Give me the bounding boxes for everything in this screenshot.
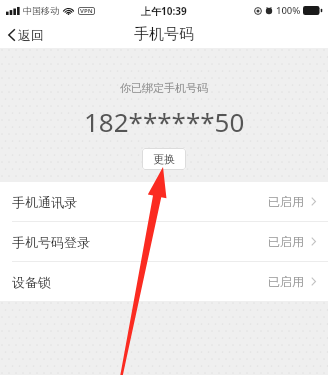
other: Open 手机通讯录 [311, 197, 316, 206]
staticText: VPN [80, 7, 93, 15]
button[interactable]: 更换 [142, 148, 186, 170]
staticText: 已启用 [268, 234, 304, 249]
button[interactable]: 手机号码登录 [0, 222, 328, 261]
staticText: 手机号码登录 [12, 234, 90, 250]
other: Open 设备锁 [311, 277, 316, 286]
button[interactable]: 设备锁 [0, 262, 328, 301]
staticText: 中国移动 [23, 5, 59, 16]
button[interactable]: 手机通讯录 [0, 182, 328, 221]
staticText: 手机通讯录 [12, 194, 77, 210]
staticText: 上午10:39 [141, 4, 187, 18]
staticText: 182******50 [84, 104, 245, 139]
staticText: 已启用 [268, 194, 304, 209]
staticText: 手机号码 [134, 25, 194, 44]
button[interactable]: 返回 [0, 22, 56, 48]
other: Open 手机号码登录 [311, 237, 316, 246]
staticText: 更换 [153, 152, 175, 166]
staticText: 已启用 [268, 274, 304, 289]
staticText: 返回 [18, 27, 44, 43]
staticText: 你已绑定手机号码 [120, 81, 208, 95]
staticText: 100% [276, 4, 301, 17]
staticText: 设备锁 [12, 274, 51, 290]
